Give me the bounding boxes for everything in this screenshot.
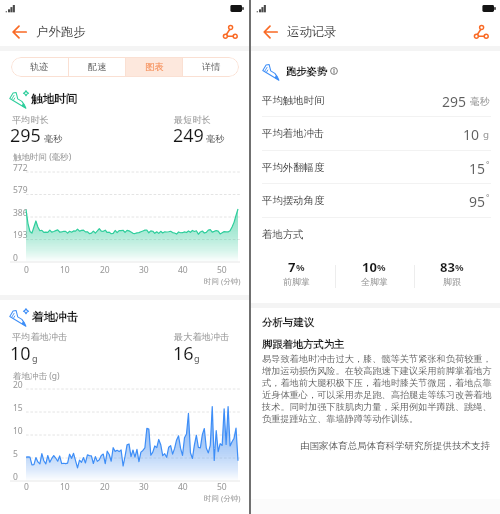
staticText: 5: [13, 448, 18, 460]
staticText: 配速: [88, 61, 107, 73]
staticText: 10: [60, 264, 70, 276]
staticText: 脚跟着地方式为主: [262, 338, 345, 351]
button[interactable]: [251, 84, 500, 117]
staticText: 触地时间 (毫秒): [13, 151, 72, 163]
staticText: 40: [178, 264, 188, 276]
staticText: %: [296, 261, 305, 274]
button[interactable]: Share: [469, 20, 493, 44]
staticText: 易导致着地时冲击过大，膝、髋等关节紧张和负荷较重，增加运动损伤风险。在较高跑速下…: [262, 353, 495, 424]
button[interactable]: [251, 151, 500, 184]
button[interactable]: 83: [412, 258, 492, 275]
staticText: 40: [178, 481, 188, 493]
staticText: g: [32, 352, 38, 364]
staticText: °: [486, 192, 490, 203]
staticText: 20: [100, 264, 110, 276]
staticText: 249: [173, 123, 204, 148]
staticText: 平均触地时间: [262, 94, 325, 107]
staticText: 295: [10, 123, 41, 148]
staticText: 295: [442, 92, 467, 109]
staticText: 10: [463, 125, 480, 142]
staticText: 跑步姿势: [286, 65, 328, 78]
staticText: 毫秒: [44, 133, 62, 144]
staticText: °: [486, 159, 490, 170]
staticText: 0: [24, 481, 29, 493]
staticText: 全脚掌: [361, 276, 388, 287]
staticText: 0: [24, 264, 29, 276]
staticText: 运动记录: [287, 24, 337, 40]
staticText: 由国家体育总局体育科学研究所提供技术支持: [300, 440, 490, 452]
staticText: 平均着地冲击: [262, 127, 325, 140]
staticText: 触地时间: [31, 92, 77, 106]
button[interactable]: 图表: [126, 57, 182, 77]
staticText: 着地冲击: [32, 310, 78, 324]
staticText: 16: [173, 341, 194, 366]
staticText: 图表: [145, 61, 164, 73]
staticText: 0: [13, 252, 18, 264]
staticText: 193: [13, 229, 28, 241]
staticText: 15: [469, 159, 486, 176]
button[interactable]: Back: [7, 19, 33, 45]
staticText: 平均外翻幅度: [262, 161, 325, 174]
button[interactable]: [251, 184, 500, 217]
staticText: 详情: [202, 61, 221, 73]
staticText: 83: [440, 258, 455, 275]
staticText: 平均着地冲击: [12, 331, 68, 343]
button[interactable]: Share: [218, 20, 242, 44]
staticText: 着地冲击 (g): [13, 370, 60, 382]
button[interactable]: 10: [334, 258, 414, 275]
button[interactable]: 详情: [183, 57, 239, 77]
staticText: 7: [288, 258, 296, 275]
staticText: 50: [217, 481, 227, 493]
button[interactable]: 7: [256, 258, 336, 275]
staticText: 最短时长: [174, 114, 211, 126]
staticText: 时间 (分钟): [204, 493, 241, 503]
staticText: 分析与建议: [262, 316, 314, 329]
staticText: 10: [60, 481, 70, 493]
staticText: 平均时长: [12, 114, 49, 126]
staticText: 30: [139, 264, 149, 276]
staticText: 386: [13, 207, 28, 219]
staticText: g: [194, 352, 200, 364]
button[interactable]: 轨迹: [11, 57, 68, 77]
staticText: 时间 (分钟): [204, 276, 241, 286]
staticText: 毫秒: [206, 133, 224, 144]
staticText: %: [377, 261, 386, 274]
staticText: 772: [13, 162, 28, 174]
staticText: 15: [13, 402, 23, 414]
staticText: 轨迹: [30, 61, 49, 73]
staticText: %: [455, 261, 464, 274]
staticText: 毫秒: [470, 96, 490, 108]
staticText: 10: [362, 258, 377, 275]
button[interactable]: [251, 117, 500, 150]
staticText: 0: [13, 471, 18, 483]
staticText: 前脚掌: [283, 276, 310, 287]
staticText: 30: [139, 481, 149, 493]
staticText: 50: [217, 264, 227, 276]
staticText: 平均摆动角度: [262, 194, 325, 207]
staticText: 95: [469, 192, 486, 209]
staticText: 10: [10, 341, 31, 366]
staticText: 脚跟: [443, 276, 461, 287]
staticText: 着地方式: [262, 228, 304, 241]
staticText: 579: [13, 184, 28, 196]
staticText: 户外跑步: [36, 24, 86, 40]
staticText: g: [483, 128, 490, 141]
button[interactable]: Back: [258, 19, 284, 45]
staticText: 最大着地冲击: [174, 331, 230, 343]
button[interactable]: 配速: [69, 57, 125, 77]
staticText: 20: [13, 379, 23, 391]
staticText: 20: [100, 481, 110, 493]
staticText: 10: [13, 425, 23, 437]
